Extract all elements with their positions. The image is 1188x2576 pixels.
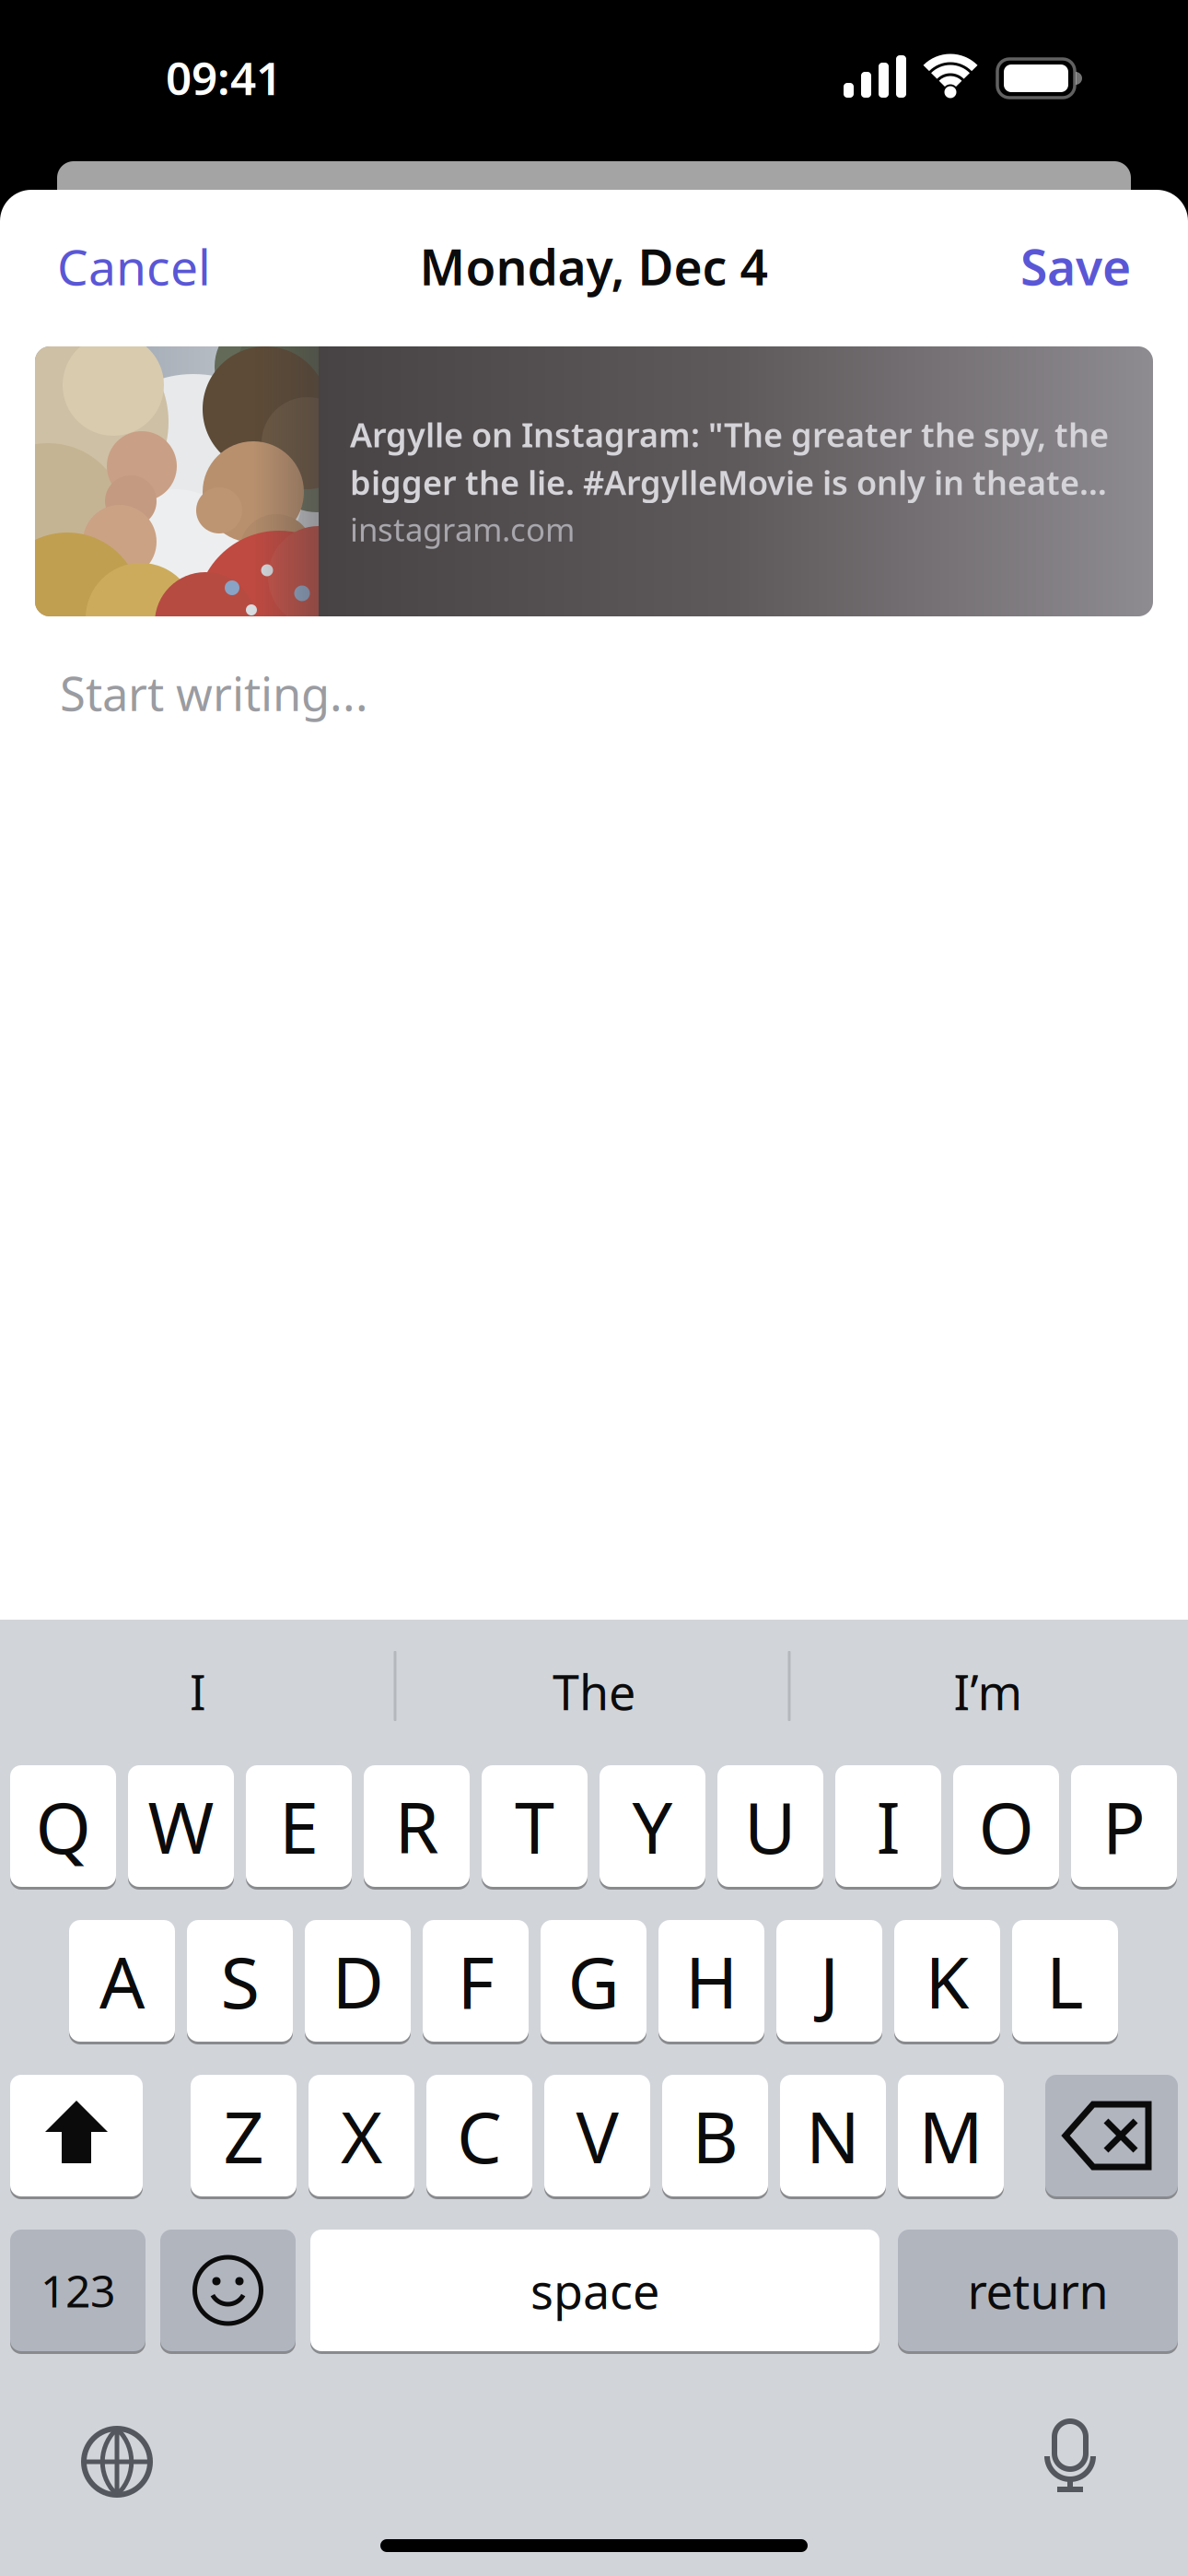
staticText: O: [978, 1779, 1034, 1873]
staticText: Monday, Dec 4: [419, 234, 769, 299]
staticText: E: [279, 1779, 319, 1873]
button[interactable]: Z: [191, 2075, 297, 2196]
button[interactable]: E: [246, 1765, 352, 1887]
staticText: Start writing...: [60, 662, 368, 724]
button[interactable]: I: [835, 1765, 941, 1887]
button[interactable]: L: [1012, 1920, 1118, 2042]
staticText: H: [685, 1934, 738, 2028]
button[interactable]: T: [482, 1765, 588, 1887]
staticText: bigger the lie. #ArgylleMovie is only in…: [350, 460, 1107, 504]
staticText: C: [457, 2088, 502, 2183]
button[interactable]: return: [898, 2230, 1178, 2351]
staticText: D: [332, 1934, 384, 2028]
staticText: S: [221, 1934, 259, 2028]
staticText: Cancel: [57, 234, 211, 299]
button[interactable]: N: [780, 2075, 886, 2196]
staticText: R: [395, 1779, 439, 1873]
button[interactable]: Save: [1020, 234, 1131, 299]
staticText: G: [568, 1934, 619, 2028]
button[interactable]: 123: [10, 2230, 146, 2351]
staticText: Z: [223, 2088, 264, 2183]
staticText: T: [515, 1779, 554, 1873]
button[interactable]: C: [426, 2075, 532, 2196]
button[interactable]: Next keyboard: [82, 2427, 152, 2497]
staticText: Q: [35, 1779, 91, 1873]
staticText: I’m: [954, 1660, 1023, 1723]
staticText: instagram.com: [350, 508, 575, 550]
button[interactable]: A: [69, 1920, 175, 2042]
staticText: Save: [1020, 234, 1131, 299]
button[interactable]: Y: [600, 1765, 705, 1887]
button[interactable]: Shift: [10, 2075, 143, 2196]
button[interactable]: M: [898, 2075, 1004, 2196]
staticText: I: [876, 1779, 900, 1873]
staticText: J: [820, 1934, 839, 2028]
button[interactable]: V: [544, 2075, 650, 2196]
staticText: W: [148, 1779, 214, 1873]
button[interactable]: G: [541, 1920, 646, 2042]
button[interactable]: The: [401, 1622, 787, 1761]
button[interactable]: J: [776, 1920, 882, 2042]
button[interactable]: I’m: [795, 1622, 1182, 1761]
button[interactable]: I: [5, 1622, 391, 1761]
staticText: K: [925, 1934, 969, 2028]
staticText: V: [576, 2088, 618, 2183]
button[interactable]: Dictate: [1044, 2421, 1096, 2495]
button[interactable]: Cancel: [57, 234, 211, 299]
button[interactable]: U: [717, 1765, 823, 1887]
staticText: 09:41: [166, 47, 282, 108]
staticText: space: [530, 2259, 659, 2322]
staticText: 123: [41, 2261, 115, 2320]
staticText: Argylle on Instagram: "The greater the s…: [350, 412, 1109, 457]
button[interactable]: R: [364, 1765, 470, 1887]
staticText: return: [967, 2259, 1108, 2322]
staticText: N: [806, 2088, 860, 2183]
button[interactable]: Argylle on Instagram: "The greater the s…: [35, 346, 1153, 616]
staticText: P: [1102, 1779, 1146, 1873]
staticText: A: [99, 1934, 145, 2028]
button[interactable]: P: [1071, 1765, 1177, 1887]
button[interactable]: Emoji: [160, 2230, 296, 2351]
button[interactable]: space: [310, 2230, 879, 2351]
staticText: L: [1046, 1934, 1084, 2028]
button[interactable]: Start writing...: [60, 662, 368, 724]
staticText: X: [341, 2088, 382, 2183]
button[interactable]: Delete: [1045, 2075, 1178, 2196]
button[interactable]: K: [894, 1920, 1000, 2042]
staticText: M: [919, 2088, 983, 2183]
staticText: U: [744, 1779, 797, 1873]
staticText: F: [457, 1934, 494, 2028]
button[interactable]: F: [423, 1920, 529, 2042]
button[interactable]: D: [305, 1920, 411, 2042]
button[interactable]: O: [953, 1765, 1059, 1887]
staticText: B: [692, 2088, 738, 2183]
staticText: Y: [632, 1779, 673, 1873]
button[interactable]: S: [187, 1920, 293, 2042]
button[interactable]: Q: [10, 1765, 116, 1887]
staticText: I: [190, 1660, 206, 1723]
button[interactable]: X: [309, 2075, 414, 2196]
button[interactable]: B: [662, 2075, 768, 2196]
button[interactable]: W: [128, 1765, 234, 1887]
staticText: The: [553, 1660, 635, 1723]
button[interactable]: H: [658, 1920, 764, 2042]
